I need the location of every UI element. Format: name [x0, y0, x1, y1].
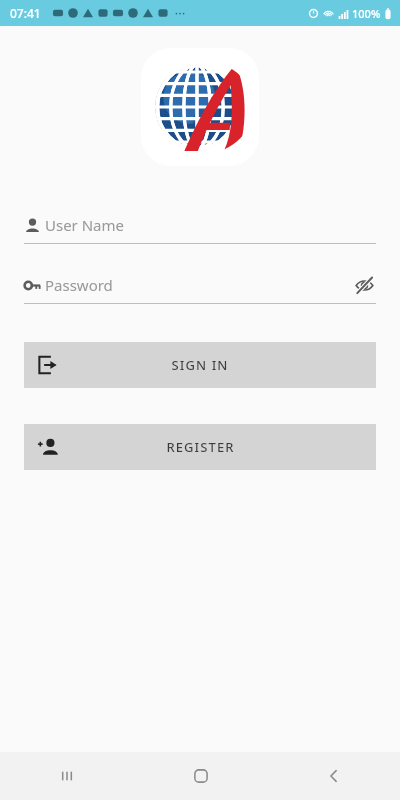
button[interactable]: Toggle password visibility — [352, 273, 376, 297]
staticText: 07:41 — [10, 5, 41, 21]
button[interactable]: Password — [24, 272, 376, 304]
staticText: SIGN IN — [171, 356, 229, 374]
staticText: 100% — [352, 6, 381, 21]
button[interactable]: Home — [134, 752, 267, 800]
button[interactable]: Recents — [0, 752, 134, 800]
staticText: User Name — [45, 215, 125, 235]
button[interactable]: REGISTER — [24, 424, 376, 470]
staticText: Password — [45, 275, 113, 295]
button[interactable]: SIGN IN — [24, 342, 376, 388]
staticText: REGISTER — [166, 438, 235, 456]
button[interactable]: Back — [267, 752, 400, 800]
button[interactable]: User Name — [24, 212, 376, 244]
